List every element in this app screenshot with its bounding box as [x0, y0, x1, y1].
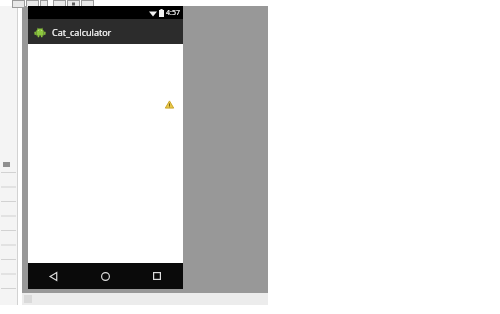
button[interactable]: Toolbar action: [81, 0, 94, 8]
button[interactable]: Toolbar action: [53, 0, 66, 8]
button[interactable]: Recent apps: [131, 263, 183, 289]
button[interactable]: Toolbar action: [67, 0, 80, 8]
button[interactable]: Back: [28, 263, 79, 289]
button[interactable]: Home: [79, 263, 131, 289]
button[interactable]: Toolbar action: [40, 0, 48, 8]
button[interactable]: Toolbar action: [26, 0, 39, 8]
staticText: Cat_calculator: [52, 26, 112, 38]
button[interactable]: Cat_calculator: [28, 19, 183, 44]
button[interactable]: Toolbar action: [12, 0, 25, 8]
staticText: 4:57: [166, 8, 180, 18]
button[interactable]: Warning: [165, 100, 174, 109]
